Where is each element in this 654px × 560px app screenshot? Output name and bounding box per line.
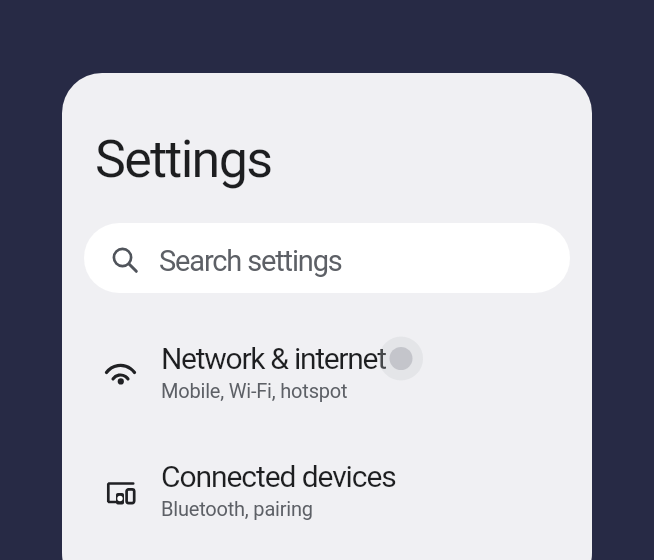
button[interactable]: Search settings [84,223,570,293]
staticText: Mobile, Wi-Fi, hotspot [161,379,348,402]
staticText: Connected devices [161,459,396,494]
staticText: Search settings [159,244,342,278]
staticText: Bluetooth, pairing [161,497,313,520]
button[interactable]: Connected devices [62,430,592,548]
staticText: Settings [95,129,272,190]
staticText: Network & internet [161,341,386,376]
button[interactable]: Network & internet [62,312,592,430]
